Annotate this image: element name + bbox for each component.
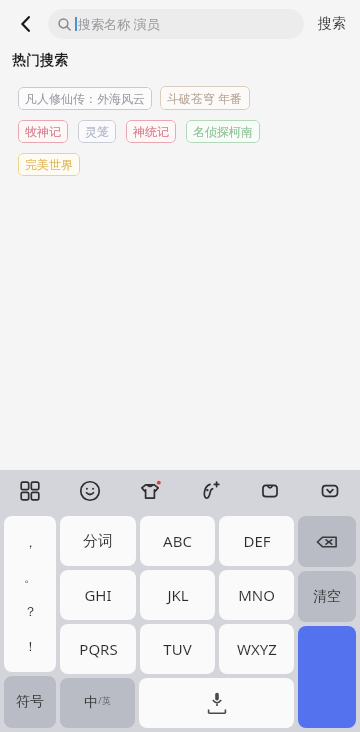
staticText: ABC bbox=[163, 531, 192, 551]
button[interactable]: ， bbox=[4, 516, 56, 672]
button[interactable]: DEF bbox=[219, 516, 294, 566]
button[interactable]: 搜索 bbox=[314, 9, 350, 39]
button[interactable]: Hide keyboard bbox=[300, 470, 360, 512]
staticText: 分词 bbox=[83, 532, 113, 551]
button[interactable]: 牧神记 bbox=[18, 120, 68, 143]
staticText: 搜索 bbox=[318, 15, 346, 33]
staticText: 符号 bbox=[16, 693, 44, 711]
staticText: 搜索名称 演员 bbox=[78, 15, 160, 33]
button[interactable]: 清空 bbox=[298, 571, 356, 622]
staticText: 中 bbox=[84, 694, 98, 712]
staticText: GHI bbox=[84, 585, 112, 605]
button[interactable]: WXYZ bbox=[219, 624, 294, 674]
button[interactable]: Keyboard layouts bbox=[0, 470, 60, 512]
button[interactable]: 凡人修仙传：外海风云 bbox=[18, 87, 152, 110]
staticText: ？ bbox=[24, 603, 37, 619]
button[interactable]: Emoji bbox=[60, 470, 120, 512]
staticText: ！ bbox=[24, 638, 37, 654]
button[interactable]: AI assistant bbox=[180, 470, 240, 512]
staticText: WXYZ bbox=[237, 639, 277, 659]
button[interactable]: JKL bbox=[140, 570, 215, 620]
button[interactable]: 中 bbox=[60, 678, 135, 728]
button[interactable]: 名侦探柯南 bbox=[186, 120, 260, 143]
staticText: 热门搜索 bbox=[12, 52, 68, 70]
staticText: ， bbox=[24, 534, 37, 550]
staticText: JKL bbox=[167, 585, 189, 605]
staticText: 名侦探柯南 bbox=[193, 124, 253, 139]
button[interactable] bbox=[139, 678, 294, 728]
button[interactable]: GHI bbox=[60, 570, 136, 620]
staticText: TUV bbox=[163, 639, 192, 659]
button[interactable]: 斗破苍穹 年番 bbox=[160, 86, 250, 110]
button[interactable]: Clipboard bbox=[240, 470, 300, 512]
staticText: 。 bbox=[24, 569, 37, 585]
button[interactable]: 完美世界 bbox=[18, 153, 80, 176]
button[interactable]: 符号 bbox=[4, 676, 56, 728]
button[interactable]: PQRS bbox=[60, 624, 136, 674]
staticText: MNO bbox=[238, 585, 275, 605]
staticText: 完美世界 bbox=[25, 157, 73, 172]
button[interactable]: TUV bbox=[140, 624, 215, 674]
button[interactable]: Backspace bbox=[298, 516, 356, 567]
staticText: 清空 bbox=[313, 588, 341, 606]
staticText: /英 bbox=[98, 694, 111, 706]
button[interactable]: Back bbox=[10, 8, 42, 40]
staticText: 神统记 bbox=[133, 124, 169, 139]
button[interactable]: Enter bbox=[298, 626, 356, 728]
staticText: 灵笼 bbox=[85, 124, 109, 139]
staticText: 牧神记 bbox=[25, 124, 61, 139]
button[interactable]: Themes bbox=[120, 470, 180, 512]
staticText: 斗破苍穹 年番 bbox=[167, 90, 243, 106]
button[interactable]: ABC bbox=[140, 516, 215, 566]
button[interactable]: MNO bbox=[219, 570, 294, 620]
button[interactable]: 灵笼 bbox=[78, 120, 116, 143]
button[interactable]: 神统记 bbox=[126, 120, 176, 143]
staticText: DEF bbox=[243, 531, 271, 551]
button[interactable]: 搜索名称 演员 bbox=[48, 9, 304, 39]
button[interactable]: 分词 bbox=[60, 516, 136, 566]
staticText: 凡人修仙传：外海风云 bbox=[25, 91, 145, 106]
staticText: PQRS bbox=[79, 639, 118, 659]
